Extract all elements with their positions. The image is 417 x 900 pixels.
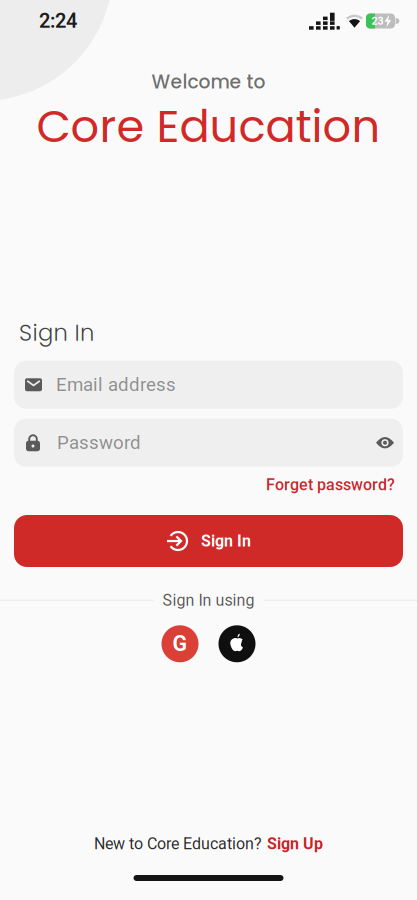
button[interactable]: Sign In: [14, 515, 403, 567]
staticText: Sign Up: [267, 835, 323, 853]
button[interactable]: Sign in with Google: [161, 625, 198, 662]
staticText: Sign In: [19, 317, 94, 349]
staticText: Email address: [56, 374, 176, 395]
button[interactable]: Forget password?: [266, 476, 395, 494]
staticText: G: [172, 632, 187, 656]
staticText: Sign In using: [162, 591, 254, 609]
staticText: Sign In: [201, 532, 251, 550]
staticText: Forget password?: [266, 476, 395, 494]
button[interactable]: Sign in with Apple: [218, 625, 255, 662]
button[interactable]: New to Core Education?: [94, 835, 323, 853]
staticText: 2:24: [39, 10, 77, 32]
staticText: New to Core Education?: [94, 835, 262, 853]
staticText: Password: [57, 432, 141, 453]
button[interactable]: Email address: [14, 361, 403, 409]
button[interactable]: Password: [14, 419, 403, 467]
staticText: Welcome to: [151, 69, 265, 95]
staticText: Core Education: [36, 95, 380, 158]
staticText: 23: [371, 15, 383, 27]
